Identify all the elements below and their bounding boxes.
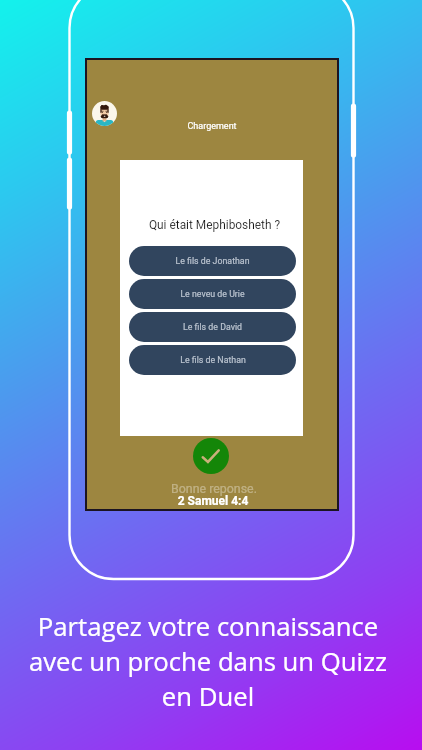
staticText: Le fils de Nathan xyxy=(180,355,246,365)
button[interactable]: Le neveu de Urie xyxy=(129,279,296,309)
button[interactable]: Le fils de David xyxy=(129,312,296,342)
button[interactable]: Le fils de Nathan xyxy=(129,345,296,375)
staticText: Partagez votre connaissance avec un proc… xyxy=(0,609,419,714)
button[interactable]: Le fils de Jonathan xyxy=(129,246,296,276)
button[interactable]: Bonne réponse xyxy=(193,438,229,474)
staticText: 2 Samuel 4:4 xyxy=(88,494,338,508)
staticText: Le fils de David xyxy=(183,322,242,332)
staticText: Qui était Mephibosheth ? xyxy=(123,218,306,232)
staticText: Le neveu de Urie xyxy=(180,289,245,299)
button[interactable]: Profil xyxy=(92,101,117,126)
staticText: Le fils de Jonathan xyxy=(175,256,250,266)
staticText: Chargement xyxy=(87,121,337,132)
staticText: Bonne reponse. xyxy=(89,481,339,496)
